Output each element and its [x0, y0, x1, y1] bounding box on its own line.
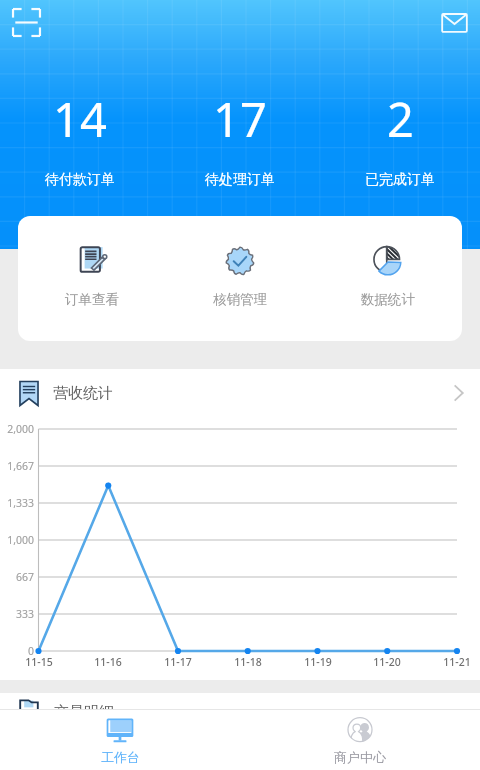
- staticText: 17: [213, 87, 267, 151]
- staticText: 工作台: [101, 749, 140, 765]
- staticText: 1,000: [0, 533, 34, 547]
- staticText: 商户中心: [334, 749, 386, 765]
- button[interactable]: 交易明细: [0, 693, 480, 709]
- staticText: 订单查看: [65, 291, 119, 308]
- staticText: 11-21: [429, 655, 480, 669]
- staticText: 2: [387, 87, 414, 151]
- staticText: 待处理订单: [205, 171, 275, 189]
- staticText: 已完成订单: [365, 171, 435, 189]
- button[interactable]: 订单查看: [18, 216, 166, 341]
- staticText: 2,000: [0, 422, 34, 436]
- staticText: 11-17: [150, 655, 206, 669]
- staticText: 11-18: [220, 655, 276, 669]
- staticText: 667: [0, 570, 34, 584]
- button[interactable]: 营收统计: [0, 369, 480, 417]
- staticText: 11-16: [80, 655, 136, 669]
- staticText: 数据统计: [361, 291, 415, 308]
- staticText: 14: [53, 87, 107, 151]
- staticText: 营收统计: [53, 384, 113, 403]
- staticText: 交易明细: [54, 703, 114, 709]
- staticText: 11-15: [11, 655, 67, 669]
- button[interactable]: Scan QR code: [9, 5, 44, 40]
- button[interactable]: 数据统计: [314, 216, 462, 341]
- staticText: 待付款订单: [45, 171, 115, 189]
- staticText: 333: [0, 607, 34, 621]
- button[interactable]: More revenue statistics: [446, 381, 470, 405]
- button[interactable]: Messages: [440, 11, 469, 37]
- button[interactable]: 商户中心: [240, 709, 480, 770]
- staticText: 11-20: [359, 655, 415, 669]
- staticText: 1,667: [0, 459, 34, 473]
- button[interactable]: 核销管理: [166, 216, 314, 341]
- button[interactable]: 工作台: [0, 709, 240, 770]
- staticText: 核销管理: [213, 291, 267, 308]
- staticText: 11-19: [290, 655, 346, 669]
- staticText: 1,333: [0, 496, 34, 510]
- staticText: 0: [0, 644, 34, 658]
